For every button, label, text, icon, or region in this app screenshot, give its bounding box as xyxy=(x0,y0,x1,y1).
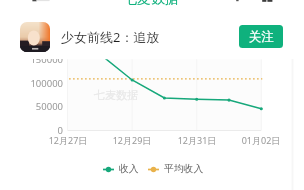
button[interactable]: 少女前线2：追放 xyxy=(20,22,160,52)
staticText: 关注 xyxy=(249,29,274,45)
staticText: 收入 xyxy=(119,163,139,175)
staticText: 150000 xyxy=(0,53,63,66)
staticText: 12月31日 xyxy=(173,134,221,146)
staticText: 100000 xyxy=(0,77,63,90)
staticText: 0 xyxy=(0,124,63,137)
staticText: 12月29日 xyxy=(108,134,156,146)
staticText: 01月02日 xyxy=(237,134,285,146)
button[interactable]: More options xyxy=(232,0,278,6)
button[interactable]: 关注 xyxy=(239,25,283,48)
staticText: 七麦数据 xyxy=(123,0,179,8)
staticText: 平均收入 xyxy=(164,163,204,175)
staticText: 50000 xyxy=(0,100,63,113)
staticText: 七麦数据 xyxy=(94,88,138,102)
staticText: 少女前线2：追放 xyxy=(61,28,160,46)
button[interactable]: Back xyxy=(26,0,52,6)
staticText: 12月27日 xyxy=(44,134,92,146)
